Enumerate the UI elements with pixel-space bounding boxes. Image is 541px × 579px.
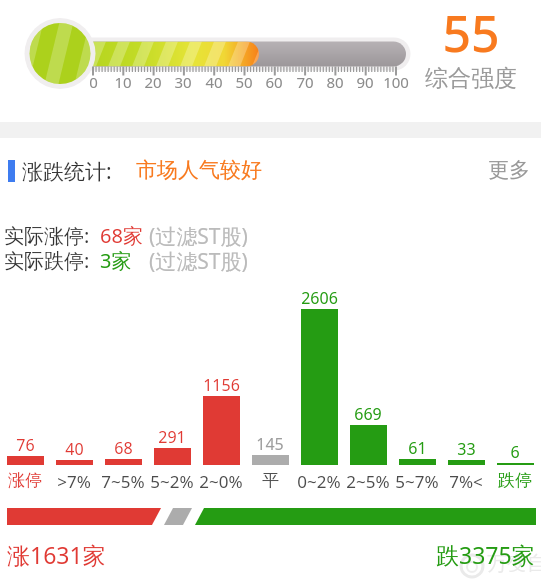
staticText: 55 <box>442 0 500 67</box>
staticText: 2~5% <box>346 470 390 493</box>
staticText: 实际涨停: <box>4 222 90 248</box>
staticText: 0~2% <box>297 470 341 493</box>
staticText: 70 <box>296 72 314 92</box>
staticText: 2~0% <box>199 470 243 493</box>
staticText: (过滤ST股) <box>149 222 248 248</box>
button[interactable]: 更多 <box>480 157 536 187</box>
staticText: 291 <box>158 426 186 448</box>
staticText: 61 <box>408 437 427 459</box>
staticText: 669 <box>354 403 382 425</box>
staticText: 33 <box>457 438 476 460</box>
staticText: 涨跌统计: <box>22 157 112 186</box>
staticText: 20 <box>144 72 162 92</box>
staticText: 3家 <box>100 247 132 273</box>
staticText: 2606 <box>301 287 338 309</box>
staticText: 5~7% <box>395 470 439 493</box>
button[interactable]: 实际跌停: <box>0 247 280 273</box>
staticText: 市场人气较好 <box>136 157 262 183</box>
staticText: 145 <box>256 433 284 455</box>
staticText: 实际跌停: <box>4 247 90 273</box>
staticText: 更多 <box>488 157 530 183</box>
staticText: (过滤ST股) <box>149 247 248 273</box>
staticText: 30 <box>174 72 192 92</box>
staticText: 跌3375家 <box>436 539 535 570</box>
staticText: 100 <box>383 72 409 92</box>
staticText: 1156 <box>203 374 240 396</box>
staticText: 0 <box>89 72 98 92</box>
staticText: 涨1631家 <box>7 539 106 570</box>
button[interactable]: 实际涨停: <box>0 222 280 248</box>
staticText: 76 <box>16 434 35 456</box>
staticText: 7~5% <box>101 470 145 493</box>
staticText: 40 <box>205 72 223 92</box>
staticText: 7%< <box>449 470 483 493</box>
staticText: 综合强度 <box>425 64 517 93</box>
staticText: 60 <box>265 72 283 92</box>
staticText: 68 <box>114 437 133 459</box>
staticText: 90 <box>356 72 374 92</box>
staticText: 6 <box>510 441 520 463</box>
staticText: >7% <box>57 470 91 493</box>
staticText: 80 <box>326 72 344 92</box>
staticText: 跌停 <box>498 470 532 491</box>
staticText: 涨停 <box>8 470 42 491</box>
staticText: 5~2% <box>150 470 194 493</box>
staticText: 40 <box>65 438 84 460</box>
staticText: 10 <box>114 72 132 92</box>
staticText: 万变自如 <box>487 551 541 576</box>
staticText: 平 <box>262 470 279 491</box>
staticText: 68家 <box>100 222 143 248</box>
staticText: 50 <box>235 72 253 92</box>
